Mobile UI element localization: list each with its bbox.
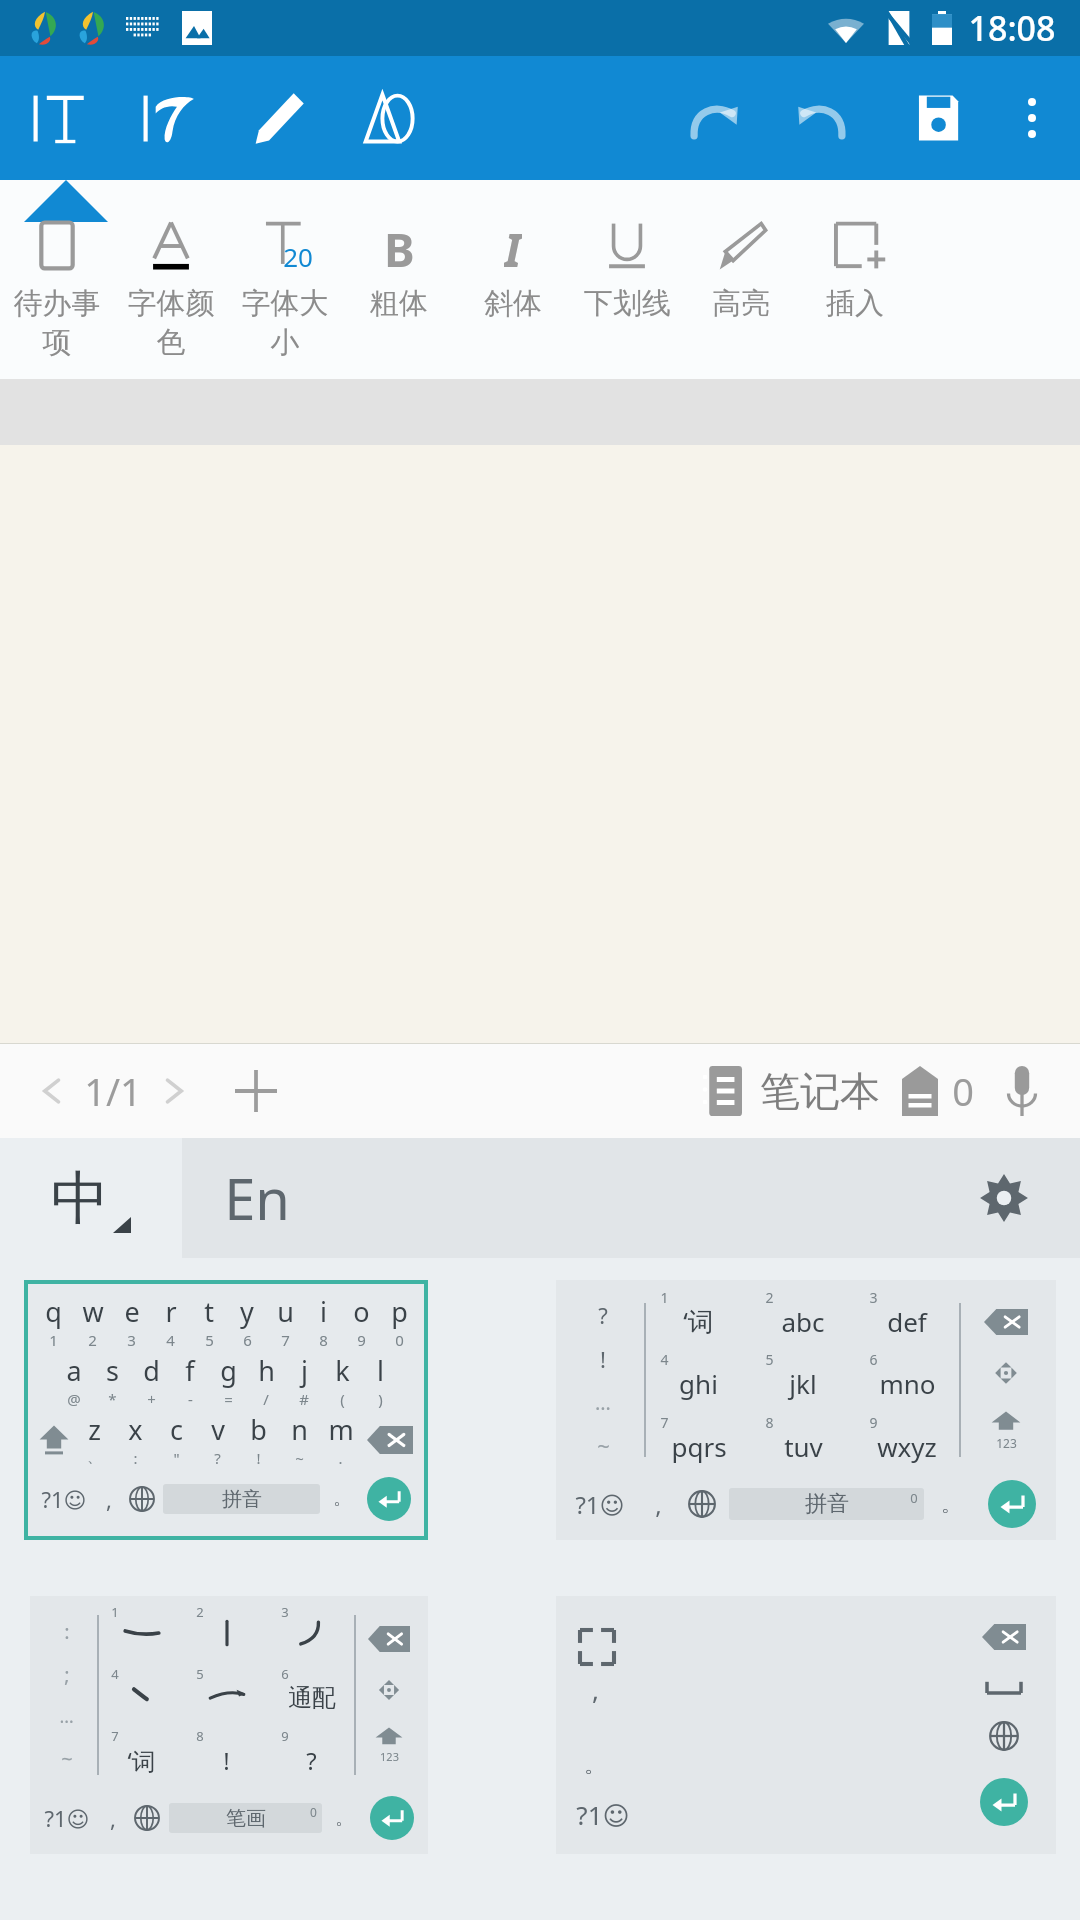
staticText: , [106, 1484, 112, 1514]
staticText: ! [600, 1344, 606, 1374]
button[interactable]: Voice input [990, 1059, 1054, 1123]
staticText: 9 [869, 1413, 878, 1432]
button[interactable]: Redo [788, 82, 860, 154]
staticText: / [263, 1389, 269, 1409]
staticText: 1/1 [84, 1065, 142, 1117]
button[interactable]: Undo [676, 82, 748, 154]
staticText: 中 [51, 1162, 109, 1235]
staticText: 1 [111, 1603, 119, 1621]
staticText: ?1☺ [575, 1488, 625, 1521]
button[interactable]: ? [556, 1280, 1056, 1540]
button[interactable]: En [182, 1138, 1080, 1258]
staticText: 2 [196, 1603, 204, 1621]
staticText: wxyz [877, 1429, 937, 1464]
button[interactable]: 待办事项 [0, 213, 114, 379]
staticText: k [335, 1352, 350, 1389]
button[interactable]: : [30, 1596, 428, 1854]
staticText: 粗体 [370, 285, 428, 322]
staticText: : [133, 1448, 138, 1468]
staticText: 插入 [826, 285, 884, 322]
staticText: B [384, 218, 415, 274]
staticText: ; [64, 1661, 70, 1688]
staticText: 5 [196, 1665, 204, 1683]
staticText: ?1☺ [576, 1797, 630, 1832]
staticText: , [655, 1488, 662, 1521]
button[interactable]: 高亮 [684, 213, 798, 340]
staticText: ‘词 [683, 1303, 714, 1339]
staticText: , [592, 1672, 599, 1707]
staticText: 2 [88, 1330, 97, 1350]
staticText: 7 [111, 1727, 119, 1745]
button[interactable]: Next page [142, 1059, 206, 1123]
staticText: 斜体 [484, 285, 542, 322]
button[interactable]: 字体颜色 [114, 213, 228, 379]
staticText: jkl [789, 1366, 817, 1401]
staticText: = [224, 1389, 233, 1409]
staticText: 通配 [288, 1683, 336, 1713]
button[interactable]: B [342, 213, 456, 340]
staticText: ! [256, 1448, 261, 1468]
staticText: 下划线 [584, 285, 671, 322]
staticText: 7 [660, 1413, 669, 1432]
staticText: abc [781, 1304, 825, 1339]
staticText: 。 [333, 1487, 351, 1510]
button[interactable]: Text mode [22, 82, 94, 154]
staticText: c [170, 1411, 183, 1448]
staticText: … [59, 1704, 74, 1729]
staticText: 笔画 [226, 1806, 266, 1831]
staticText: 4 [166, 1330, 175, 1350]
staticText: p [391, 1293, 408, 1330]
staticText: z [88, 1411, 101, 1448]
staticText: d [143, 1352, 160, 1389]
button[interactable]: 20 [228, 213, 342, 379]
button[interactable]: Handwriting mode [132, 82, 204, 154]
staticText: ?1☺ [41, 1484, 87, 1514]
staticText: 4 [111, 1665, 119, 1683]
staticText: ~ [597, 1430, 610, 1460]
staticText: pqrs [671, 1429, 727, 1464]
button[interactable]: Shapes [352, 82, 424, 154]
button[interactable]: I [456, 213, 570, 340]
button[interactable]: Previous page [20, 1059, 84, 1123]
button[interactable]: 0 [902, 1065, 974, 1117]
button[interactable]: More options [1004, 90, 1060, 146]
staticText: ? [598, 1300, 608, 1330]
staticText: ~ [295, 1448, 304, 1468]
staticText: 8 [196, 1727, 204, 1745]
staticText: 。 [335, 1807, 353, 1830]
staticText: 7 [281, 1330, 290, 1350]
staticText: g [220, 1352, 237, 1389]
staticText: ~ [61, 1745, 73, 1772]
staticText: def [887, 1304, 927, 1339]
staticText: " [173, 1448, 180, 1468]
staticText: En [224, 1160, 290, 1236]
staticText: y [240, 1293, 254, 1330]
staticText: 高亮 [712, 285, 770, 322]
button[interactable]: Add page [224, 1059, 288, 1123]
staticText: 5 [765, 1350, 774, 1369]
staticText: r [165, 1293, 177, 1330]
button[interactable]: Draw [242, 82, 314, 154]
staticText: 。 [584, 1751, 606, 1779]
staticText: 0 [310, 1804, 317, 1820]
staticText: 6 [281, 1665, 289, 1683]
staticText: 。 [941, 1492, 961, 1517]
staticText: t [204, 1293, 214, 1330]
staticText: + [147, 1389, 156, 1409]
staticText: @ [67, 1389, 81, 1409]
staticText: v [211, 1411, 225, 1448]
button[interactable]: q [24, 1280, 428, 1540]
button[interactable]: 下划线 [570, 213, 684, 340]
button[interactable]: , [556, 1596, 1056, 1854]
staticText: 4 [660, 1350, 669, 1369]
staticText: 、 [87, 1448, 102, 1467]
button[interactable]: 笔记本 [700, 1066, 880, 1116]
button[interactable]: 插入 [798, 213, 912, 340]
staticText: 0 [395, 1330, 404, 1350]
button[interactable]: 中 [0, 1138, 182, 1258]
button[interactable]: Save [902, 82, 974, 154]
staticText: ( [340, 1389, 345, 1409]
staticText: h [258, 1352, 275, 1389]
staticText: e [124, 1293, 140, 1330]
button[interactable]: Keyboard settings [972, 1166, 1036, 1230]
